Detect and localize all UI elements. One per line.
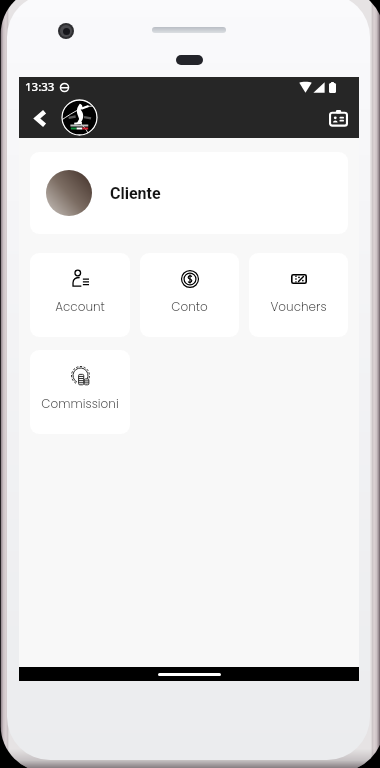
button[interactable]: Vouchers — [249, 253, 348, 337]
staticText: Vouchers — [270, 298, 327, 315]
button[interactable]: Account — [30, 253, 130, 337]
staticText: Account — [55, 298, 105, 315]
button[interactable]: App logo — [61, 99, 98, 136]
button[interactable]: Cliente — [30, 152, 348, 234]
button[interactable]: Conto — [140, 253, 239, 337]
staticText: Cliente — [110, 184, 161, 203]
button[interactable]: Commissioni — [30, 350, 130, 434]
button[interactable]: Profile card — [323, 103, 353, 133]
staticText: Commissioni — [41, 395, 119, 412]
staticText: Conto — [171, 298, 208, 315]
button[interactable]: Back — [25, 103, 55, 133]
staticText: 13:33 — [25, 79, 55, 95]
